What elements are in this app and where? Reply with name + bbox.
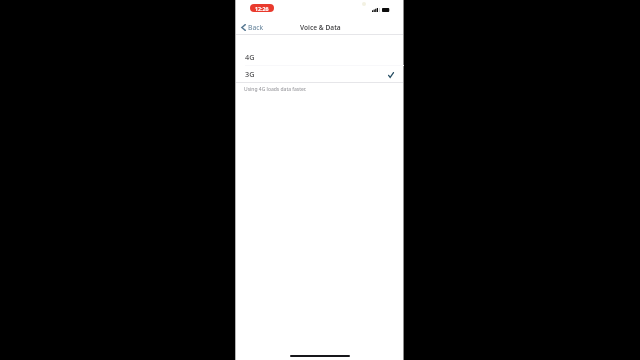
button[interactable]: 4G bbox=[236, 49, 403, 65]
staticText: 4G bbox=[245, 52, 255, 62]
staticText: Using 4G loads data faster. bbox=[244, 86, 307, 93]
staticText: Voice & Data bbox=[300, 23, 341, 32]
staticText: 12:26 bbox=[255, 5, 269, 12]
other: Selected bbox=[388, 72, 394, 78]
button[interactable]: 3G bbox=[236, 66, 403, 82]
button[interactable]: Back bbox=[236, 21, 270, 34]
staticText: 3G bbox=[245, 69, 255, 79]
staticText: Back bbox=[248, 23, 264, 32]
